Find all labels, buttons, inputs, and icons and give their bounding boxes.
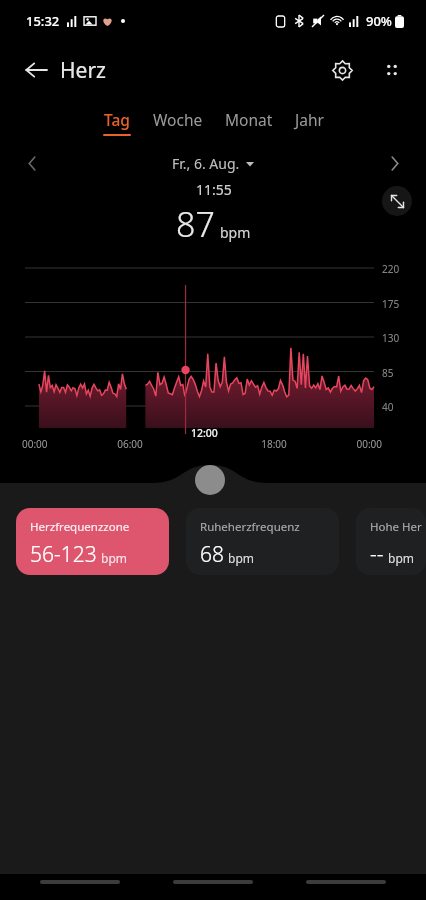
button[interactable]: Back [14, 48, 58, 92]
button[interactable]: Next day [378, 147, 410, 179]
button[interactable]: Tag [101, 105, 133, 140]
button[interactable]: Navigation [173, 880, 253, 884]
button[interactable]: Woche [151, 105, 205, 140]
staticText: 12:00 [191, 426, 218, 440]
staticText: Hohe Herzfrequenz [370, 519, 426, 535]
staticText: bpm [101, 550, 127, 566]
button[interactable]: Fr., 6. Aug. [172, 154, 254, 173]
button[interactable]: More options [370, 48, 414, 92]
button[interactable]: Navigation [40, 880, 120, 884]
staticText: Ruheherzfrequenz [200, 519, 300, 535]
staticText: Monat [225, 109, 273, 130]
staticText: 87 [176, 201, 215, 247]
staticText: 68 [200, 540, 224, 569]
staticText: Tag [104, 109, 130, 130]
staticText: 11:55 [196, 180, 232, 199]
staticText: Herzfrequenzzone [30, 519, 130, 535]
staticText: 00:00 [22, 437, 94, 451]
button[interactable]: Herzfrequenzzone [16, 508, 169, 575]
staticText: bpm [228, 550, 254, 566]
staticText: 90% [366, 12, 392, 30]
button[interactable]: Expand chart [382, 186, 412, 216]
staticText: 15:32 [26, 12, 60, 30]
staticText: 175 [382, 297, 400, 311]
staticText: Fr., 6. Aug. [172, 154, 240, 173]
button[interactable]: Ruheherzfrequenz [186, 508, 339, 575]
staticText: 00:00 [310, 437, 382, 451]
staticText: 40 [382, 400, 394, 414]
button[interactable]: Hohe Herzfrequenz [356, 508, 426, 575]
staticText: bpm [388, 550, 414, 566]
staticText: Woche [153, 109, 203, 130]
staticText: 06:00 [94, 437, 166, 451]
button[interactable]: Settings [320, 48, 364, 92]
staticText: 85 [382, 366, 394, 380]
button[interactable]: Navigation [306, 880, 386, 884]
staticText: Jahr [295, 109, 324, 130]
staticText: -- [370, 540, 384, 569]
staticText: 56-123 [30, 540, 97, 569]
button[interactable]: Monat [223, 105, 275, 140]
staticText: 18:00 [238, 437, 310, 451]
button[interactable]: Jahr [293, 105, 326, 140]
staticText: Herz [60, 56, 106, 85]
staticText: bpm [220, 223, 251, 242]
staticText: 220 [382, 262, 400, 276]
button[interactable]: Previous day [16, 147, 48, 179]
staticText: 130 [382, 331, 400, 345]
